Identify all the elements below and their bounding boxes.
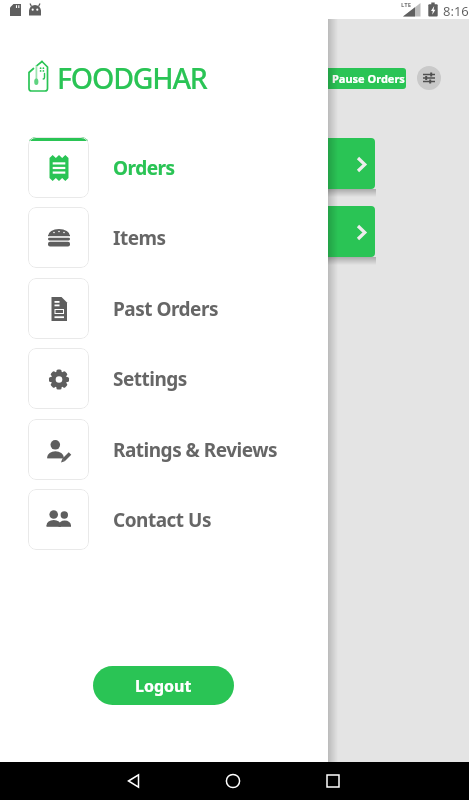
button[interactable]: Items — [28, 207, 300, 268]
button[interactable] — [110, 762, 158, 800]
button[interactable]: Pause Orders — [318, 68, 406, 89]
button[interactable] — [309, 762, 357, 800]
staticText: Settings — [113, 366, 187, 392]
button[interactable] — [300, 206, 375, 257]
staticText: 8:16 — [443, 2, 469, 20]
button[interactable]: Settings — [28, 348, 300, 409]
button[interactable]: Logout — [93, 666, 234, 705]
staticText: Contact Us — [113, 507, 211, 533]
staticText: Past Orders — [113, 296, 218, 322]
button[interactable]: Orders — [28, 137, 300, 198]
staticText: FOODGHAR — [57, 59, 207, 98]
button[interactable]: Ratings & Reviews — [28, 419, 300, 480]
staticText: Items — [113, 225, 166, 251]
staticText: Pause Orders — [332, 71, 405, 86]
button[interactable] — [300, 138, 375, 189]
button[interactable] — [209, 762, 257, 800]
staticText: Logout — [135, 675, 192, 697]
button[interactable] — [417, 66, 441, 90]
button[interactable]: Past Orders — [28, 278, 300, 339]
staticText: Orders — [113, 155, 175, 181]
button[interactable]: Contact Us — [28, 489, 300, 550]
staticText: LTE — [401, 1, 412, 9]
staticText: Ratings & Reviews — [113, 437, 278, 463]
